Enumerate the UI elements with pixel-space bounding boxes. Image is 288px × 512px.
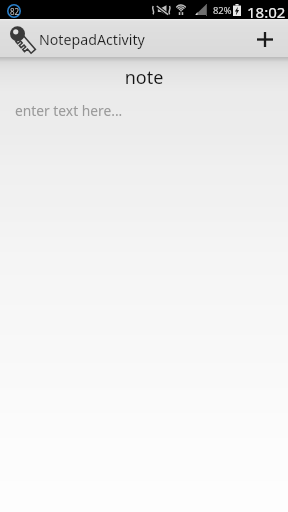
staticText: 82 — [10, 6, 20, 17]
staticText: 82% — [213, 4, 232, 17]
button[interactable]: Add note — [246, 19, 284, 57]
staticText: NotepadActivity — [39, 30, 145, 49]
staticText: 18:02 — [247, 2, 286, 21]
staticText: note — [0, 65, 288, 90]
staticText: enter text here... — [15, 101, 123, 120]
